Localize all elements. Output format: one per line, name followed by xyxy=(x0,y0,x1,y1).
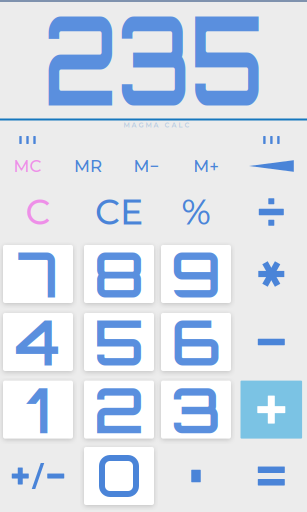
staticText: 235 xyxy=(0,0,307,136)
staticText: 9 xyxy=(170,235,221,312)
button[interactable]: Multiply xyxy=(240,245,302,303)
staticText: M− xyxy=(133,156,159,176)
button[interactable]: Equals xyxy=(240,447,302,505)
button[interactable]: Toggle sign xyxy=(3,447,73,505)
staticText: C xyxy=(25,191,50,233)
button[interactable]: 2 xyxy=(84,381,154,439)
button[interactable]: Backspace xyxy=(243,154,299,178)
staticText: 7 xyxy=(18,235,58,312)
button[interactable]: 7 xyxy=(3,245,73,303)
staticText: 5 xyxy=(93,303,144,380)
button[interactable]: CE xyxy=(84,194,154,230)
staticText: 2 xyxy=(93,371,144,448)
staticText: 1 xyxy=(26,371,50,448)
button[interactable]: % xyxy=(161,194,231,230)
button[interactable]: M+ xyxy=(183,154,229,178)
button[interactable]: 3 xyxy=(161,381,231,439)
staticText: 4 xyxy=(15,303,60,380)
button[interactable]: C xyxy=(3,194,73,230)
button[interactable]: Plus xyxy=(240,381,302,439)
staticText: 8 xyxy=(93,235,144,312)
staticText: MC xyxy=(13,156,41,176)
button[interactable]: 0 xyxy=(84,447,154,505)
button[interactable]: 4 xyxy=(3,313,73,371)
staticText: % xyxy=(181,191,210,233)
staticText: 6 xyxy=(171,303,221,380)
staticText: M+ xyxy=(193,156,219,176)
button[interactable]: 5 xyxy=(84,313,154,371)
staticText: 3 xyxy=(170,371,221,448)
button[interactable]: 8 xyxy=(84,245,154,303)
staticText: MR xyxy=(74,156,102,176)
button[interactable]: 6 xyxy=(161,313,231,371)
staticText: M A G M A C A L C xyxy=(123,121,189,129)
button[interactable]: M− xyxy=(123,154,169,178)
button[interactable]: Divide xyxy=(240,194,302,230)
button[interactable]: 1 xyxy=(3,381,73,439)
staticText: CE xyxy=(95,191,143,233)
button[interactable]: Minus xyxy=(240,313,302,371)
button[interactable]: Decimal point xyxy=(161,447,231,505)
button[interactable]: MC xyxy=(4,154,50,178)
button[interactable]: 9 xyxy=(161,245,231,303)
button[interactable]: MR xyxy=(65,154,111,178)
